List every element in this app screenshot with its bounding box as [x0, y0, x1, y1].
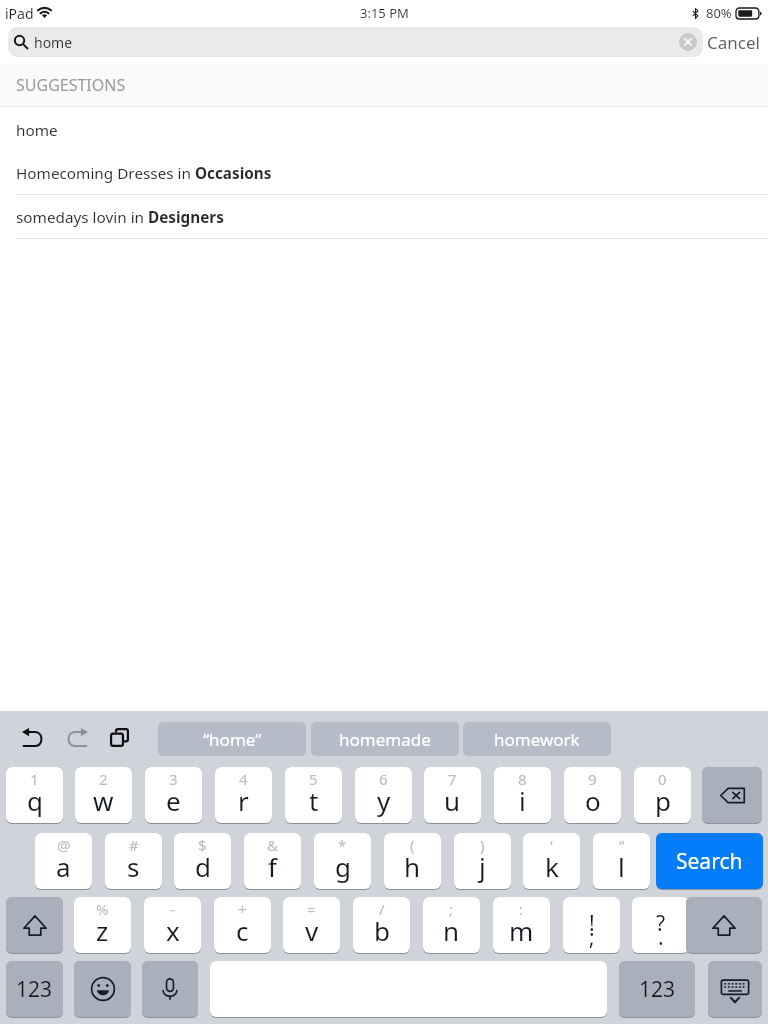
staticText: 80% [706, 4, 732, 22]
staticText: h [404, 849, 421, 884]
staticText: d [195, 849, 211, 884]
button[interactable]: 4 [215, 767, 272, 823]
button[interactable]: $ [174, 833, 231, 889]
staticText: 3:15 PM [360, 4, 409, 22]
button[interactable]: 3 [145, 767, 202, 823]
button[interactable]: - [144, 897, 201, 953]
button[interactable]: Homecoming Dresses in Occasions [0, 151, 768, 195]
button[interactable]: # [105, 833, 162, 889]
staticText: 123 [639, 975, 676, 1004]
staticText: r [238, 783, 249, 818]
staticText: 123 [16, 975, 53, 1004]
staticText: f [268, 849, 277, 884]
button[interactable]: ) [454, 833, 511, 889]
staticText: c [236, 913, 249, 948]
staticText: Search [676, 847, 743, 876]
button[interactable]: home [8, 27, 703, 57]
button[interactable]: Emoji [74, 961, 131, 1017]
staticText: m [509, 913, 534, 948]
button[interactable]: 9 [564, 767, 621, 823]
staticText: ! [589, 909, 595, 938]
button[interactable]: Paste [104, 723, 134, 751]
button[interactable]: 6 [355, 767, 412, 823]
button[interactable]: = [283, 897, 340, 953]
button[interactable]: “ [593, 833, 650, 889]
button[interactable]: % [74, 897, 131, 953]
staticText: + [238, 899, 247, 919]
staticText: 9 [588, 769, 597, 789]
staticText: - [170, 899, 175, 919]
button[interactable]: + [214, 897, 271, 953]
button[interactable]: * [314, 833, 371, 889]
staticText: n [443, 913, 460, 948]
button[interactable]: ! [563, 897, 620, 953]
staticText: % [96, 899, 109, 919]
button[interactable]: : [493, 897, 550, 953]
staticText: SUGGESTIONS [16, 74, 126, 96]
button[interactable]: 123 [6, 961, 63, 1017]
staticText: e [166, 783, 181, 818]
button[interactable]: Backspace [702, 767, 762, 823]
button[interactable]: homework [463, 722, 611, 756]
button[interactable]: 0 [634, 767, 691, 823]
staticText: somedays lovin in Designers [16, 207, 224, 228]
button[interactable]: / [353, 897, 410, 953]
button[interactable]: 5 [285, 767, 342, 823]
staticText: 7 [448, 769, 457, 789]
staticText: t [309, 783, 319, 818]
staticText: Homecoming Dresses in Occasions [16, 163, 272, 184]
button[interactable]: 123 [619, 961, 695, 1017]
button[interactable]: ( [384, 833, 441, 889]
button[interactable]: home [0, 108, 768, 152]
staticText: s [127, 849, 140, 884]
button[interactable]: Hide keyboard [708, 961, 762, 1017]
button[interactable]: 1 [6, 767, 63, 823]
button[interactable]: Clear text [679, 33, 697, 51]
staticText: @ [57, 835, 71, 855]
staticText: ‘ [550, 835, 553, 855]
staticText: $ [198, 835, 207, 855]
button[interactable]: ‘ [523, 833, 580, 889]
staticText: 2 [99, 769, 108, 789]
button[interactable]: 2 [75, 767, 132, 823]
staticText: ) [480, 835, 485, 855]
staticText: w [93, 783, 114, 818]
staticText: y [377, 783, 391, 818]
staticText: homework [494, 728, 580, 751]
staticText: i [519, 783, 526, 818]
staticText: ; [589, 923, 595, 952]
button[interactable]: “home” [158, 722, 306, 756]
button[interactable]: ; [423, 897, 480, 953]
button[interactable]: Shift [686, 897, 762, 953]
staticText: z [96, 913, 109, 948]
button[interactable]: Search [656, 833, 763, 889]
button[interactable]: homemade [311, 722, 459, 756]
staticText: 0 [658, 769, 667, 789]
staticText: # [129, 835, 139, 855]
button[interactable]: Undo [18, 723, 48, 751]
button[interactable]: Shift [6, 897, 63, 953]
button[interactable]: ? [632, 897, 689, 953]
button[interactable]: & [244, 833, 301, 889]
button[interactable]: Cancel [704, 27, 762, 57]
button[interactable]: 8 [494, 767, 551, 823]
button[interactable]: somedays lovin in Designers [0, 195, 768, 239]
button[interactable]: 7 [424, 767, 481, 823]
staticText: l [618, 849, 625, 884]
staticText: ; [449, 899, 454, 919]
staticText: 8 [518, 769, 527, 789]
staticText: b [374, 913, 390, 948]
staticText: 4 [239, 769, 248, 789]
staticText: v [305, 913, 319, 948]
button[interactable]: Dictation [142, 961, 198, 1017]
button[interactable]: @ [35, 833, 92, 889]
staticText: ( [410, 835, 415, 855]
staticText: “ [619, 835, 625, 855]
staticText: home [34, 33, 73, 52]
staticText: x [166, 913, 180, 948]
staticText: Cancel [707, 31, 760, 54]
staticText: & [267, 835, 278, 855]
staticText: 1 [30, 769, 39, 789]
button[interactable]: Redo [62, 723, 92, 751]
